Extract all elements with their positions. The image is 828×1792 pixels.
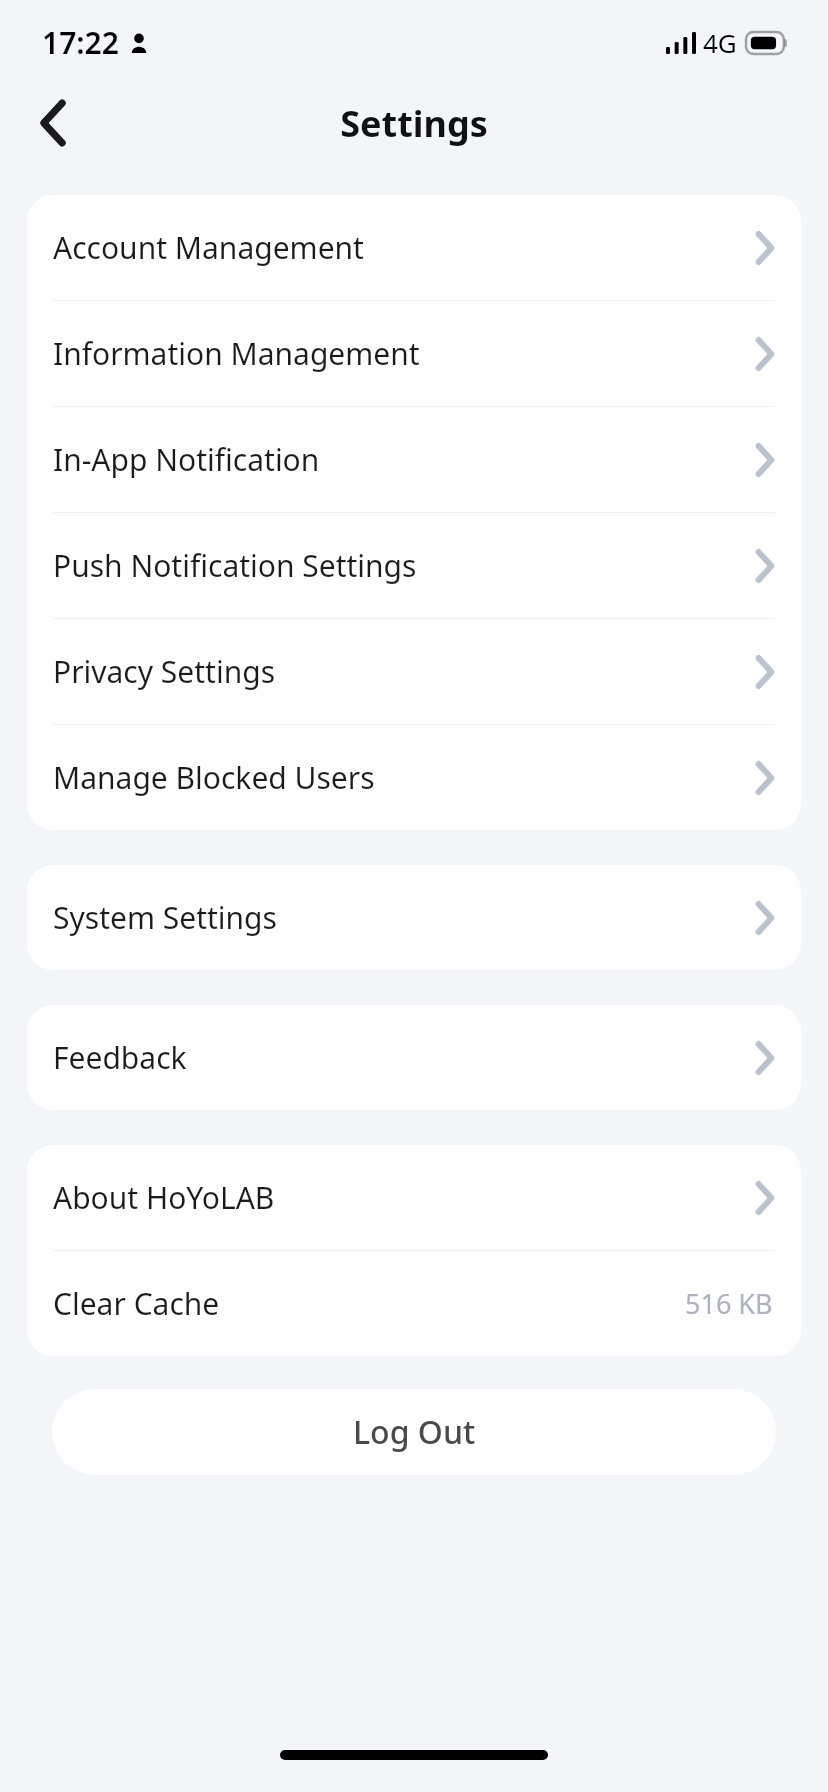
button[interactable]: Back	[22, 92, 84, 154]
staticText: Push Notification Settings	[53, 545, 417, 586]
staticText: Settings	[340, 99, 488, 148]
button[interactable]: Push Notification Settings	[27, 513, 801, 618]
staticText: Manage Blocked Users	[53, 757, 375, 798]
staticText: 516 KB	[685, 1285, 773, 1322]
button[interactable]: System Settings	[27, 865, 801, 970]
staticText: Feedback	[53, 1037, 187, 1078]
staticText: Log Out	[353, 1410, 476, 1454]
button[interactable]: Information Management	[27, 301, 801, 406]
staticText: Information Management	[53, 333, 420, 374]
staticText: In-App Notification	[53, 439, 320, 480]
button[interactable]: Account Management	[27, 195, 801, 300]
button[interactable]: Feedback	[27, 1005, 801, 1110]
staticText: About HoYoLAB	[53, 1177, 275, 1218]
staticText: 17:22	[42, 22, 119, 63]
staticText: Clear Cache	[53, 1283, 220, 1324]
staticText: 4G	[703, 25, 737, 60]
button[interactable]: Log Out	[52, 1389, 776, 1475]
staticText: Privacy Settings	[53, 651, 275, 692]
staticText: System Settings	[53, 897, 277, 938]
button[interactable]: About HoYoLAB	[27, 1145, 801, 1250]
button[interactable]: Manage Blocked Users	[27, 725, 801, 830]
staticText: Account Management	[53, 227, 364, 268]
button[interactable]: Privacy Settings	[27, 619, 801, 724]
button[interactable]: In-App Notification	[27, 407, 801, 512]
button[interactable]: Clear Cache	[27, 1251, 801, 1356]
